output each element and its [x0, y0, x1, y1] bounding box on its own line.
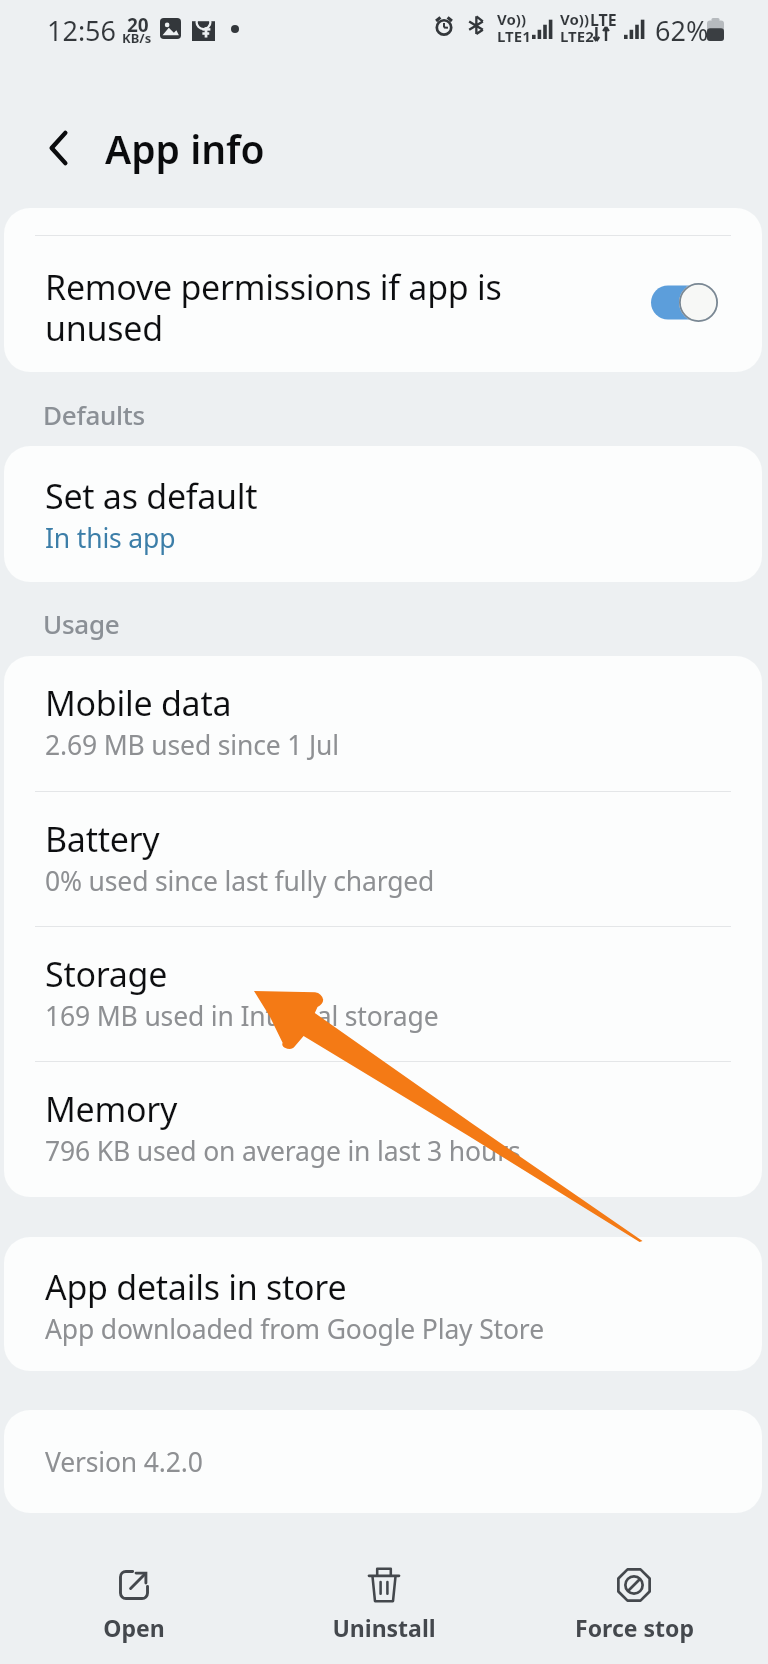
- staticText: LTE2: [560, 26, 594, 46]
- button[interactable]: App details in store: [4, 1237, 762, 1371]
- staticText: LTE1: [497, 26, 531, 46]
- staticText: App downloaded from Google Play Store: [45, 1311, 544, 1347]
- staticText: Force stop: [575, 1612, 694, 1643]
- button[interactable]: Storage: [4, 927, 762, 1062]
- button[interactable]: Open: [9, 1512, 259, 1664]
- staticText: App info: [105, 122, 265, 175]
- staticText: 20: [127, 12, 149, 38]
- staticText: 12:56: [47, 12, 117, 49]
- staticText: Storage: [45, 951, 168, 997]
- staticText: 0% used since last fully charged: [45, 863, 435, 899]
- button[interactable]: Force stop: [509, 1512, 759, 1664]
- staticText: Set as default: [45, 473, 258, 519]
- staticText: Vo)): [560, 9, 589, 29]
- button[interactable]: Remove permissions if app is unused: [4, 208, 762, 372]
- button[interactable]: Memory: [4, 1062, 762, 1197]
- button[interactable]: Remove permissions toggle: [651, 283, 718, 322]
- staticText: Defaults: [43, 397, 145, 432]
- staticText: 796 KB used on average in last 3 hours: [45, 1133, 521, 1169]
- staticText: Battery: [45, 816, 160, 862]
- staticText: Open: [103, 1612, 165, 1643]
- button[interactable]: Mobile data: [4, 656, 762, 792]
- button[interactable]: Uninstall: [259, 1512, 509, 1664]
- staticText: Version 4.2.0: [45, 1444, 203, 1480]
- staticText: LTE: [590, 9, 617, 31]
- staticText: Uninstall: [332, 1612, 436, 1643]
- staticText: In this app: [45, 520, 176, 556]
- staticText: Vo)): [497, 9, 526, 29]
- button[interactable]: Set as default: [4, 446, 762, 582]
- staticText: Remove permissions if app is unused: [45, 264, 502, 351]
- button[interactable]: Battery: [4, 792, 762, 927]
- staticText: 169 MB used in Internal storage: [45, 998, 439, 1034]
- staticText: Memory: [45, 1086, 178, 1132]
- button[interactable]: Back: [30, 120, 86, 176]
- staticText: Mobile data: [45, 680, 232, 726]
- staticText: App details in store: [45, 1264, 347, 1310]
- staticText: 62%: [655, 12, 709, 49]
- staticText: Usage: [43, 606, 120, 641]
- staticText: KB/s: [122, 29, 152, 47]
- staticText: 2.69 MB used since 1 Jul: [45, 727, 339, 763]
